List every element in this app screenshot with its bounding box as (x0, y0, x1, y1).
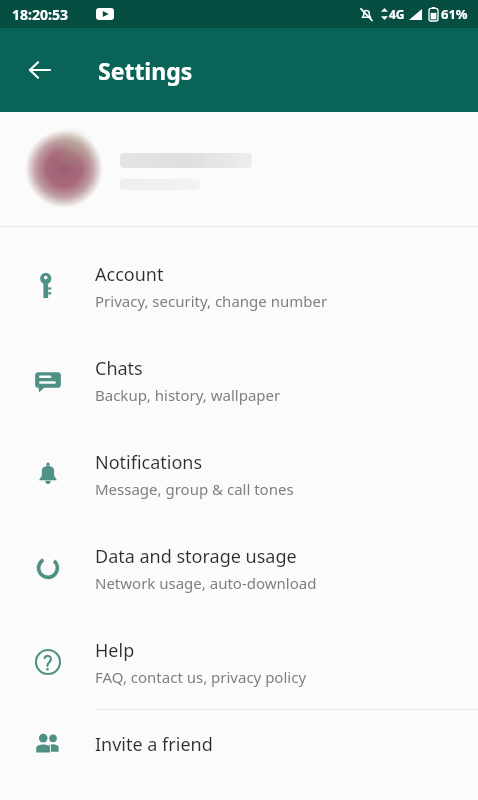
staticText: Chats (95, 356, 143, 381)
button[interactable]: Back (16, 46, 64, 94)
staticText: Notifications (95, 450, 203, 475)
button[interactable]: Chats (0, 333, 478, 427)
staticText: 4G (389, 6, 405, 22)
staticText: Network usage, auto-download (95, 573, 317, 593)
staticText: Settings (98, 55, 193, 86)
staticText: Data and storage usage (95, 544, 297, 569)
staticText: Invite a friend (95, 732, 213, 757)
staticText: Backup, history, wallpaper (95, 385, 281, 405)
staticText: Message, group & call tones (95, 479, 294, 499)
button[interactable]: Help (0, 615, 478, 709)
staticText: Help (95, 638, 135, 663)
button[interactable]: Account (0, 239, 478, 333)
staticText: Account (95, 262, 164, 287)
staticText: Privacy, security, change number (95, 291, 328, 311)
button[interactable]: Notifications (0, 427, 478, 521)
button[interactable]: Data and storage usage (0, 521, 478, 615)
button[interactable] (0, 112, 478, 226)
button[interactable]: Invite a friend (0, 710, 478, 778)
staticText: 61% (441, 5, 468, 23)
staticText: FAQ, contact us, privacy policy (95, 667, 307, 687)
staticText: 18:20:53 (12, 5, 68, 24)
